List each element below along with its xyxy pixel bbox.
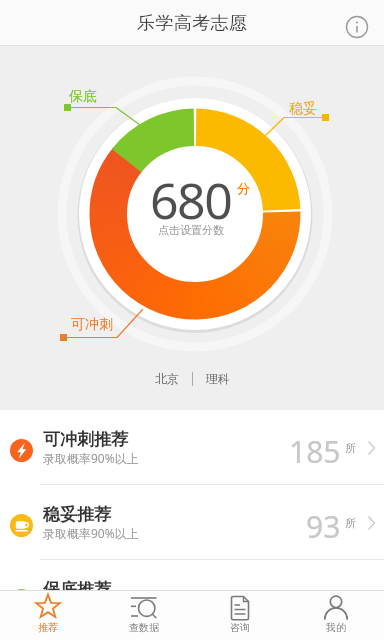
staticText: 推荐: [38, 621, 58, 634]
staticText: 录取概率90%以上: [43, 450, 139, 466]
staticText: 分: [237, 180, 250, 196]
staticText: 稳妥: [289, 100, 317, 118]
staticText: 录取概率90%以上: [43, 525, 139, 541]
staticText: 保底: [69, 88, 97, 106]
button[interactable]: 咨询: [192, 591, 288, 640]
button[interactable]: 我的: [288, 591, 384, 640]
button[interactable]: 可冲刺推荐: [0, 410, 384, 485]
staticText: 可冲刺推荐: [43, 429, 128, 450]
staticText: 可冲刺: [71, 316, 113, 334]
staticText: 185: [289, 431, 341, 472]
button[interactable]: [346, 16, 368, 38]
staticText: 北京: [155, 371, 179, 386]
staticText: 乐学高考志愿: [137, 12, 248, 35]
button[interactable]: 查数据: [96, 591, 192, 640]
staticText: 保底推荐: [43, 579, 111, 590]
staticText: 查数据: [129, 621, 159, 634]
staticText: 680: [150, 166, 232, 234]
button[interactable]: 保底: [0, 46, 384, 410]
button[interactable]: 保底推荐: [0, 560, 384, 590]
staticText: 我的: [326, 621, 346, 634]
staticText: 理科: [206, 371, 230, 386]
staticText: 所: [345, 516, 356, 530]
staticText: 所: [345, 441, 356, 455]
staticText: 咨询: [230, 621, 250, 634]
button[interactable]: 北京: [155, 371, 230, 386]
staticText: 93: [306, 506, 341, 547]
staticText: 点击设置分数: [158, 223, 224, 237]
staticText: 稳妥推荐: [43, 504, 111, 525]
button[interactable]: 推荐: [0, 591, 96, 640]
button[interactable]: 稳妥推荐: [0, 485, 384, 560]
